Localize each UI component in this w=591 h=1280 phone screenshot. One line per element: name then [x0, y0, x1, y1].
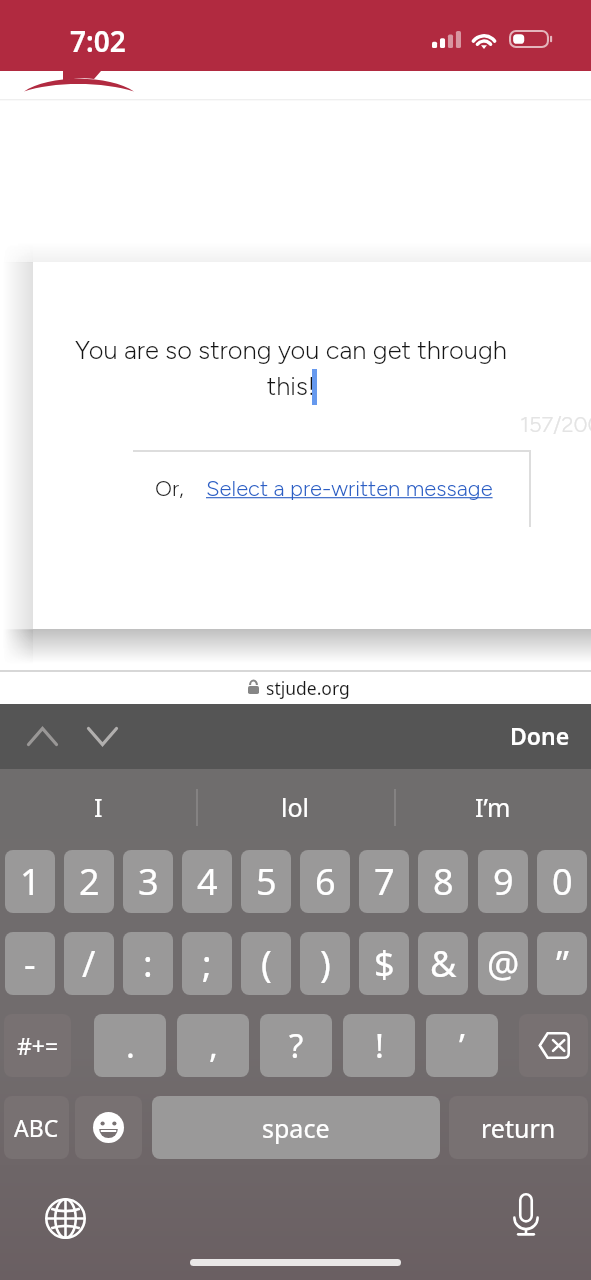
- button[interactable]: :: [123, 932, 173, 995]
- button[interactable]: 7: [359, 850, 409, 913]
- button[interactable]: Change keyboard language: [40, 1193, 90, 1243]
- button[interactable]: return: [449, 1096, 588, 1159]
- staticText: I’m: [475, 790, 511, 824]
- staticText: 7: [374, 857, 395, 906]
- button[interactable]: @: [478, 932, 528, 995]
- staticText: ): [320, 939, 331, 988]
- button[interactable]: 4: [182, 850, 232, 913]
- staticText: ABC: [14, 1112, 59, 1143]
- button[interactable]: I’m: [395, 776, 591, 838]
- staticText: &: [430, 939, 457, 988]
- staticText: 8: [433, 857, 454, 906]
- staticText: !: [375, 1023, 384, 1068]
- button[interactable]: -: [5, 932, 55, 995]
- staticText: Select a pre-written message: [206, 475, 493, 501]
- button[interactable]: ?: [260, 1014, 332, 1077]
- button[interactable]: Select a pre-written message: [206, 475, 493, 501]
- button[interactable]: ABC: [4, 1096, 69, 1159]
- staticText: Or,: [155, 475, 184, 501]
- staticText: 157/200: [520, 411, 591, 437]
- button[interactable]: 3: [123, 850, 173, 913]
- button[interactable]: ): [300, 932, 350, 995]
- staticText: 3: [138, 857, 159, 906]
- button[interactable]: #+=: [4, 1014, 71, 1077]
- button[interactable]: (: [241, 932, 291, 995]
- staticText: lol: [281, 790, 310, 824]
- staticText: ,: [209, 1023, 218, 1068]
- button[interactable]: &: [418, 932, 468, 995]
- button[interactable]: 8: [418, 850, 468, 913]
- staticText: 7:02: [70, 22, 126, 60]
- staticText: 1: [20, 857, 41, 906]
- button[interactable]: Done: [498, 712, 582, 759]
- button[interactable]: Backspace: [519, 1014, 588, 1077]
- button[interactable]: Previous field: [18, 712, 66, 760]
- staticText: stjude.org: [266, 676, 350, 700]
- button[interactable]: space: [152, 1096, 440, 1159]
- staticText: Done: [510, 720, 570, 751]
- staticText: 6: [315, 857, 336, 906]
- staticText: :: [143, 939, 153, 988]
- button[interactable]: 5: [241, 850, 291, 913]
- staticText: 0: [552, 857, 573, 906]
- button[interactable]: ”: [537, 932, 587, 995]
- staticText: @: [487, 939, 520, 988]
- button[interactable]: Emoji: [75, 1096, 142, 1159]
- staticText: 5: [256, 857, 277, 906]
- staticText: ”: [556, 939, 569, 988]
- button[interactable]: ,: [177, 1014, 249, 1077]
- staticText: ’: [459, 1023, 465, 1068]
- staticText: 2: [79, 857, 100, 906]
- button[interactable]: 9: [478, 850, 528, 913]
- staticText: ;: [202, 939, 212, 988]
- button[interactable]: I: [0, 776, 196, 838]
- staticText: (: [261, 939, 272, 988]
- staticText: return: [481, 1111, 556, 1145]
- staticText: $: [374, 939, 395, 988]
- staticText: 4: [197, 857, 218, 906]
- button[interactable]: Next field: [78, 712, 126, 760]
- button[interactable]: 0: [537, 850, 587, 913]
- button[interactable]: ;: [182, 932, 232, 995]
- staticText: 9: [493, 857, 514, 906]
- button[interactable]: 1: [5, 850, 55, 913]
- button[interactable]: .: [94, 1014, 166, 1077]
- button[interactable]: /: [64, 932, 114, 995]
- button[interactable]: $: [359, 932, 409, 995]
- staticText: .: [126, 1023, 135, 1068]
- staticText: ?: [289, 1023, 304, 1068]
- button[interactable]: 6: [300, 850, 350, 913]
- staticText: -: [24, 939, 36, 988]
- staticText: /: [82, 939, 96, 988]
- staticText: I: [94, 790, 103, 824]
- staticText: space: [262, 1111, 330, 1145]
- button[interactable]: ’: [426, 1014, 498, 1077]
- staticText: You are so strong you can get through th…: [56, 335, 526, 401]
- button[interactable]: 2: [64, 850, 114, 913]
- button[interactable]: lol: [197, 776, 394, 838]
- button[interactable]: !: [343, 1014, 415, 1077]
- button[interactable]: Dictate: [501, 1190, 551, 1240]
- staticText: #+=: [17, 1030, 59, 1061]
